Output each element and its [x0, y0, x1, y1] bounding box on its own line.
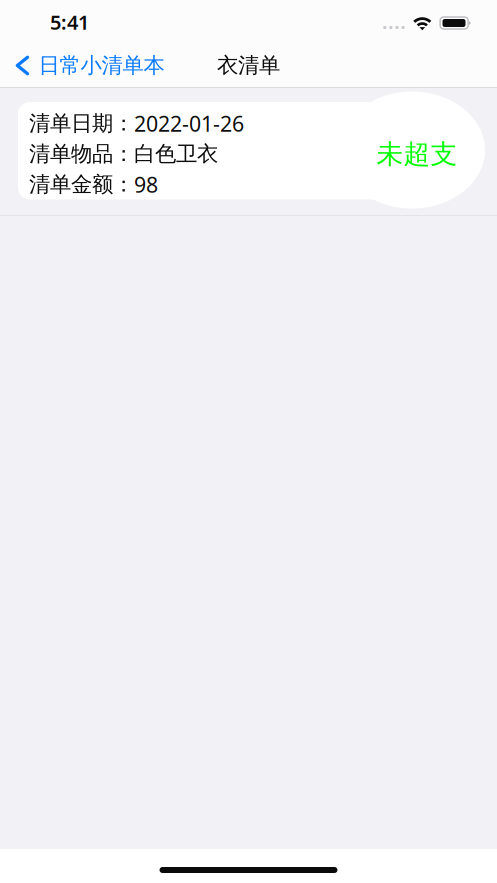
staticText: 日常小清单本 [38, 52, 164, 79]
staticText: 白色卫衣 [134, 141, 218, 167]
staticText: 2022-01-26 [134, 109, 244, 138]
staticText: 未超支 [376, 138, 457, 170]
button[interactable]: 日常小清单本 [0, 44, 174, 88]
staticText: 98 [134, 170, 158, 199]
staticText: 清单日期： [29, 110, 134, 137]
staticText: 5:41 [50, 9, 89, 35]
staticText: 衣清单 [217, 52, 280, 79]
staticText: 清单物品： [29, 141, 134, 167]
staticText: 清单金额： [29, 171, 134, 198]
